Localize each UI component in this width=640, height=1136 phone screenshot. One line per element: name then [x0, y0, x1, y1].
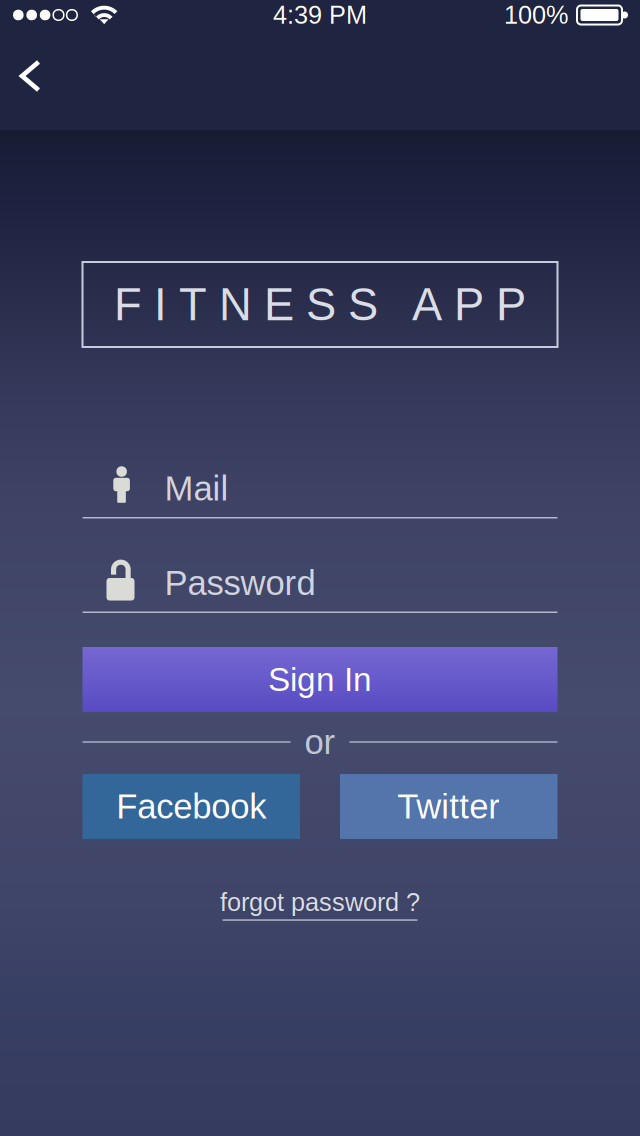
staticText: Facebook — [116, 787, 266, 826]
staticText: FITNESS APP — [114, 279, 526, 330]
staticText: 100% — [504, 1, 569, 29]
staticText: Mail — [164, 469, 228, 508]
button[interactable]: forgot password ? — [220, 888, 420, 921]
staticText: Sign In — [268, 661, 372, 698]
staticText: Twitter — [397, 787, 500, 826]
button[interactable]: Facebook — [82, 774, 300, 839]
staticText: or — [304, 723, 335, 761]
staticText: forgot password ? — [220, 888, 420, 916]
button[interactable]: Twitter — [340, 774, 557, 839]
button[interactable]: Back — [0, 30, 62, 130]
staticText: 4:39 PM — [273, 1, 367, 29]
staticText: Password — [164, 563, 315, 602]
button[interactable]: Sign In — [82, 647, 557, 712]
